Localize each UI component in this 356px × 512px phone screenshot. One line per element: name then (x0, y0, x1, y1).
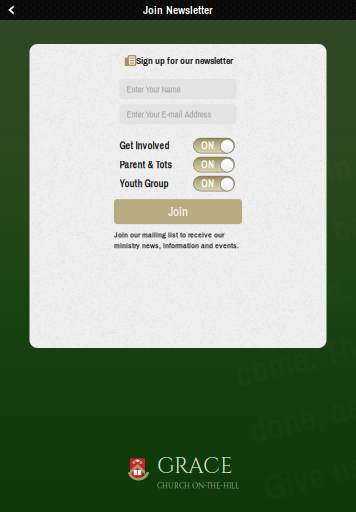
staticText: GRACE (157, 452, 233, 481)
staticText: Enter Your E-mail Address (126, 108, 211, 120)
staticText: CHURCH ON-THE-HILL (157, 481, 239, 491)
staticText: ON (201, 177, 214, 191)
staticText: Join our mailing list to receive our (114, 229, 224, 240)
staticText: hallowed be (228, 186, 356, 233)
staticText: Get Involved (119, 139, 169, 152)
staticText: the prayer (228, 10, 356, 57)
button[interactable]: Enter Your Name (119, 79, 236, 99)
button[interactable]: Toggle on (193, 138, 234, 153)
staticText: Join (168, 203, 188, 220)
button[interactable]: Enter Your E-mail Address (119, 104, 236, 124)
button[interactable]: Toggle on (193, 157, 234, 172)
button[interactable]: Join (114, 199, 242, 224)
staticText: come. Thy will (228, 303, 356, 350)
staticText: one: "I say (228, 69, 356, 115)
staticText: ministry news, information and events. (114, 240, 239, 251)
staticText: thy name. (228, 245, 356, 291)
staticText: Join Newsletter (143, 2, 213, 18)
button[interactable]: Toggle on (193, 176, 234, 191)
staticText: Parent & Tots (119, 158, 172, 171)
staticText: Youth Group (119, 177, 168, 190)
staticText: ON (201, 139, 214, 153)
button[interactable]: Back (0, 0, 22, 20)
staticText: Which art in (228, 127, 356, 174)
staticText: Give us this (228, 421, 356, 468)
staticText: ON (201, 158, 214, 172)
staticText: Enter Your Name (126, 83, 180, 95)
staticText: Sign up for our newsletter (136, 54, 233, 67)
staticText: And lead us not (228, 480, 356, 512)
